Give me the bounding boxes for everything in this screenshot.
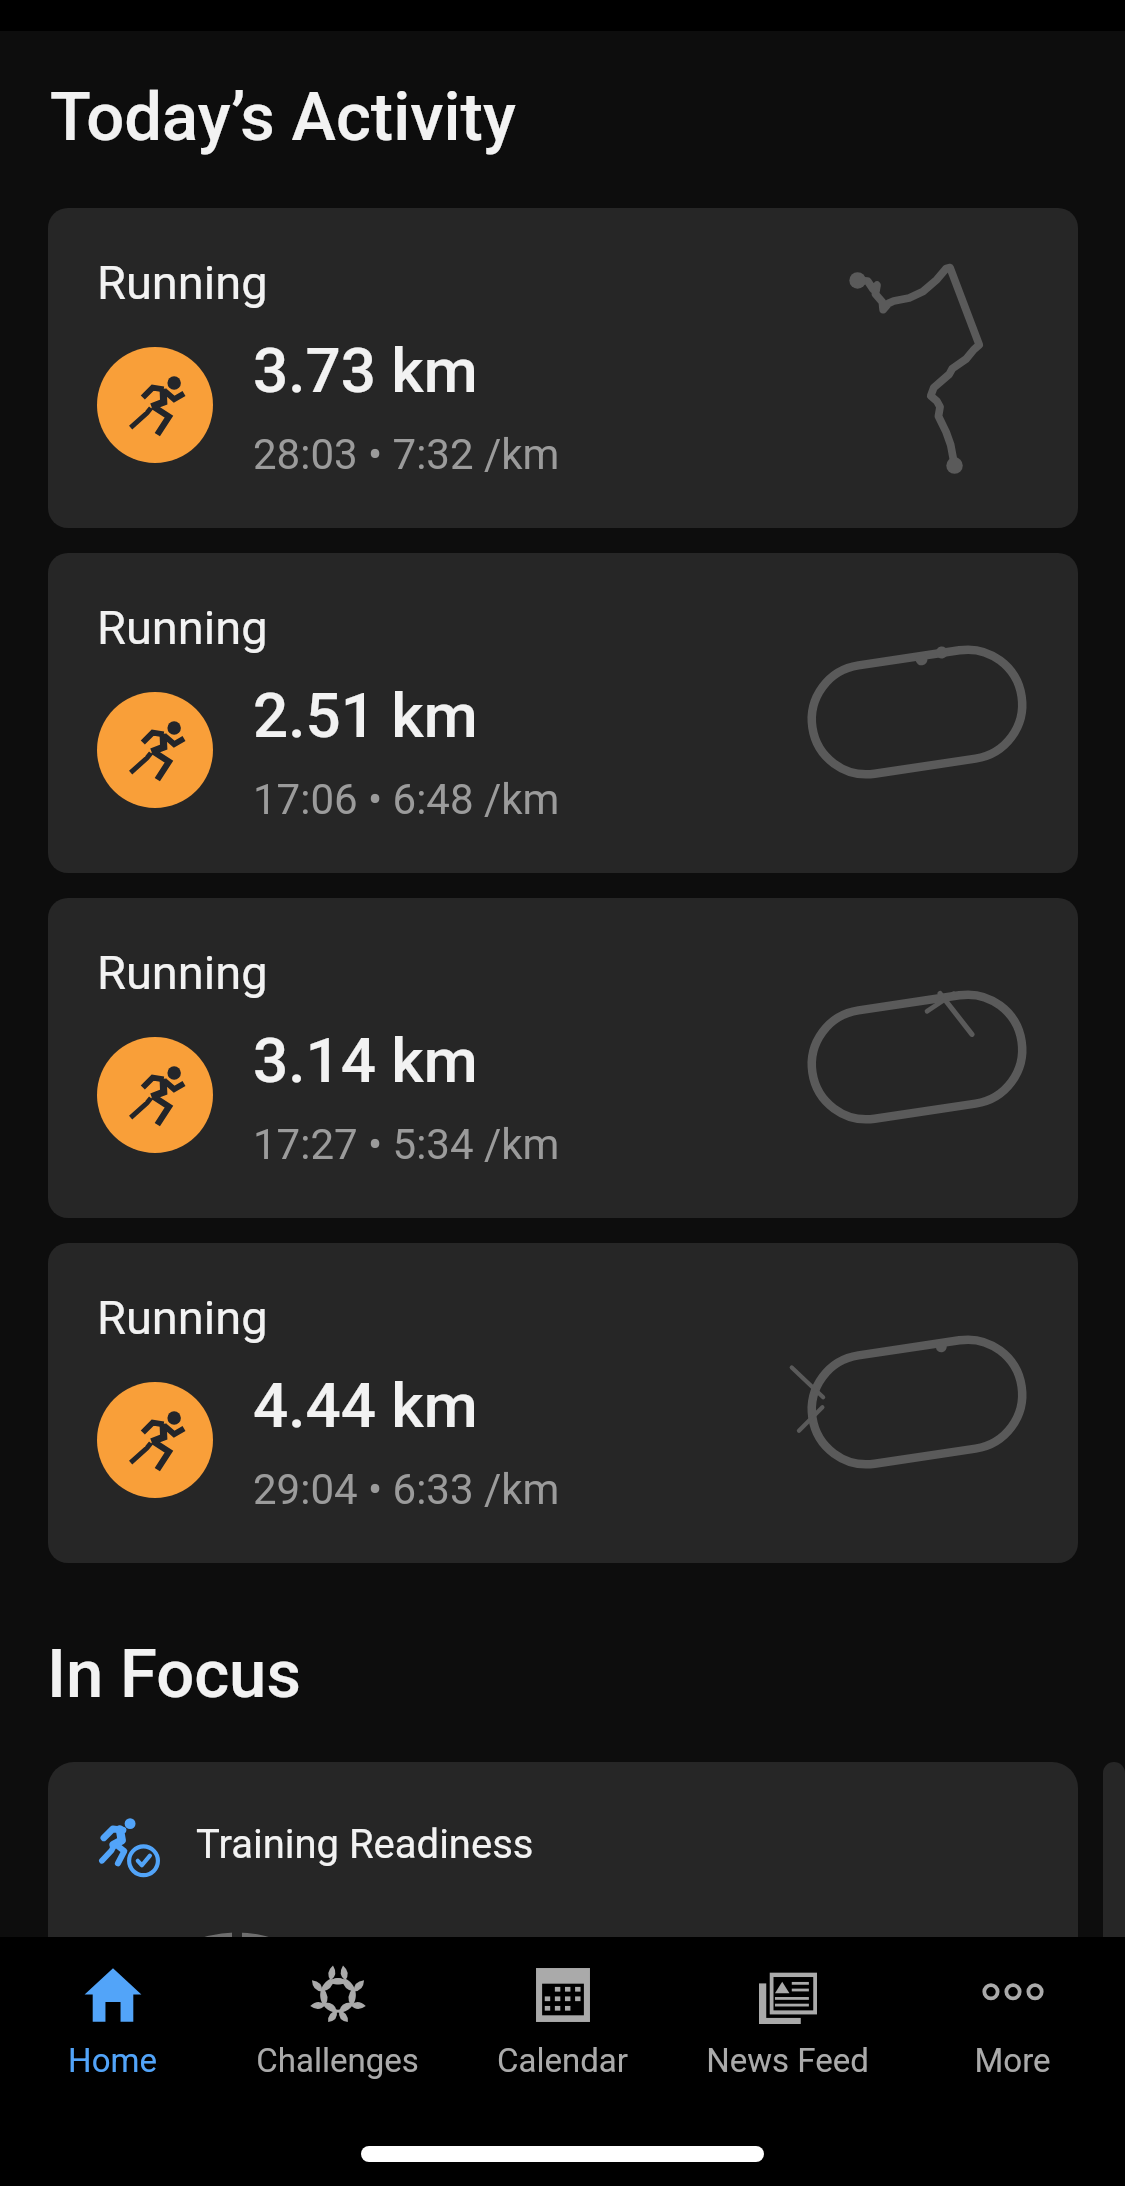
staticText: Running xyxy=(97,945,268,1000)
staticText: 4.44 km xyxy=(253,1369,478,1442)
staticText: More xyxy=(974,2041,1051,2080)
staticText: News Feed xyxy=(706,2041,869,2080)
staticText: Running xyxy=(97,1290,268,1345)
staticText: 2.51 km xyxy=(253,679,478,752)
button[interactable]: Calendar xyxy=(450,1937,675,2080)
button[interactable]: Running xyxy=(48,553,1078,873)
button[interactable]: Running xyxy=(48,1243,1078,1563)
staticText: Challenges xyxy=(256,2041,419,2080)
staticText: Today’s Activity xyxy=(50,78,516,157)
staticText: Home xyxy=(68,2041,157,2080)
staticText: 3.14 km xyxy=(253,1024,478,1097)
button[interactable] xyxy=(1103,1762,1125,1992)
staticText: 29:04 • 6:33 /km xyxy=(253,1465,560,1514)
staticText: 17:27 • 5:34 /km xyxy=(253,1120,560,1169)
button[interactable]: Running xyxy=(48,208,1078,528)
staticText: Running xyxy=(97,255,268,310)
staticText: Training Readiness xyxy=(196,1821,534,1868)
staticText: In Focus xyxy=(47,1635,301,1714)
staticText: 17:06 • 6:48 /km xyxy=(253,775,560,824)
staticText: Running xyxy=(97,600,268,655)
staticText: 28:03 • 7:32 /km xyxy=(253,430,560,479)
staticText: 3.73 km xyxy=(253,334,478,407)
button[interactable]: Running xyxy=(48,898,1078,1218)
button[interactable]: Training Readiness xyxy=(48,1762,1078,1992)
button[interactable]: Home xyxy=(0,1937,225,2080)
button[interactable]: News Feed xyxy=(675,1937,900,2080)
staticText: Calendar xyxy=(497,2041,628,2080)
button[interactable]: Challenges xyxy=(225,1937,450,2080)
button[interactable]: More xyxy=(900,1937,1125,2080)
